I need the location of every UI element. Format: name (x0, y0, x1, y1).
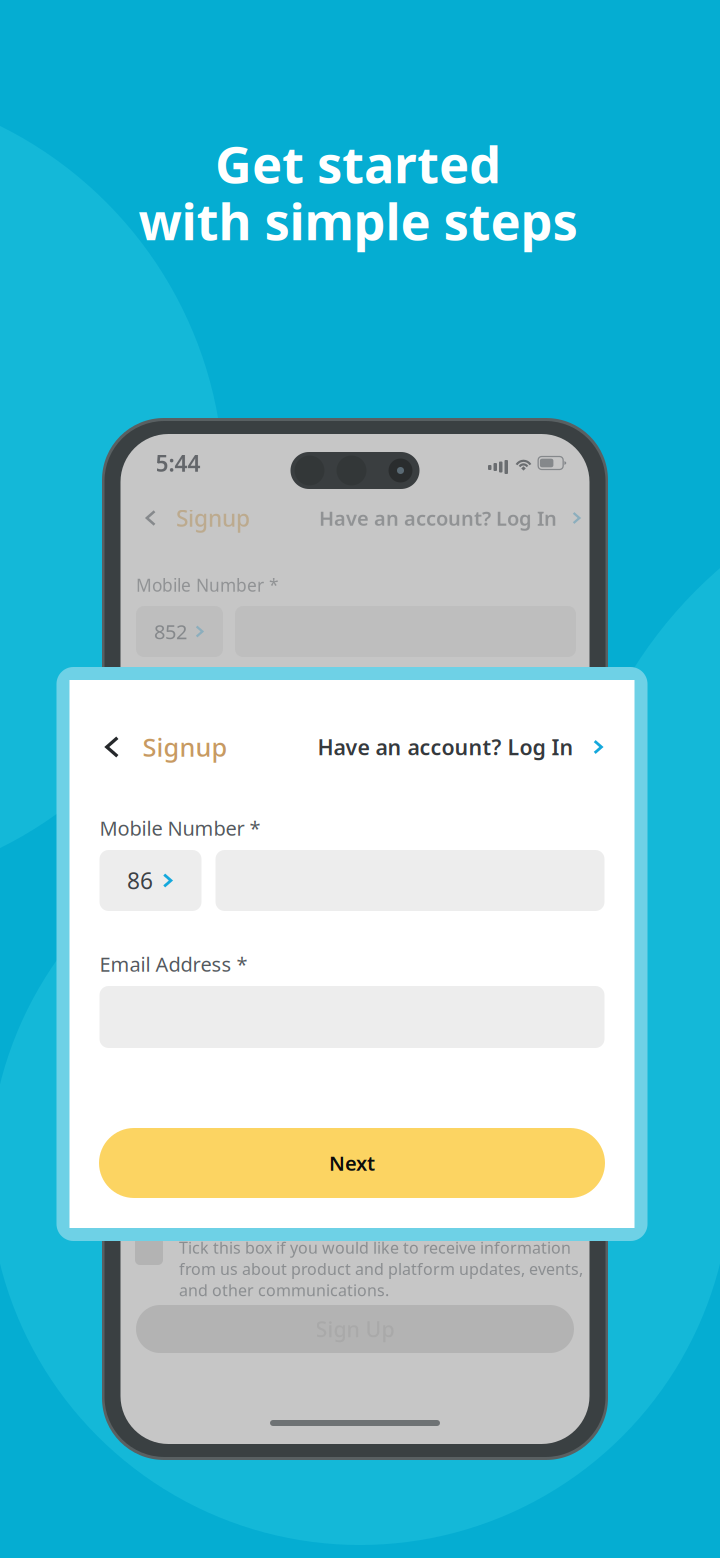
button[interactable]: Sign Up (136, 1305, 574, 1353)
staticText: with simple steps (138, 187, 577, 254)
button[interactable]: Have an account? Log In (317, 727, 604, 767)
staticText: Sign Up (315, 1315, 394, 1343)
button[interactable]: 86 (99, 850, 201, 911)
staticText: Get started (215, 130, 501, 197)
button[interactable]: Signup (99, 727, 227, 767)
staticText: Next (329, 1150, 375, 1176)
staticText: Tick this box if you would like to recei… (179, 1237, 583, 1301)
staticText: Have an account? Log In (319, 505, 557, 531)
staticText: Mobile Number * (99, 815, 260, 841)
staticText: 86 (127, 865, 153, 895)
staticText: Signup (176, 503, 250, 533)
staticText: 852 (154, 618, 187, 645)
staticText: Have an account? Log In (317, 733, 573, 761)
staticText: Mobile Number * (136, 573, 279, 596)
staticText: Email Address * (99, 951, 247, 977)
staticText: 5:44 (155, 448, 200, 478)
button[interactable]: Next (99, 1128, 605, 1198)
staticText: Signup (142, 730, 227, 764)
button[interactable]: Tick this box if you would like to recei… (135, 1237, 575, 1289)
